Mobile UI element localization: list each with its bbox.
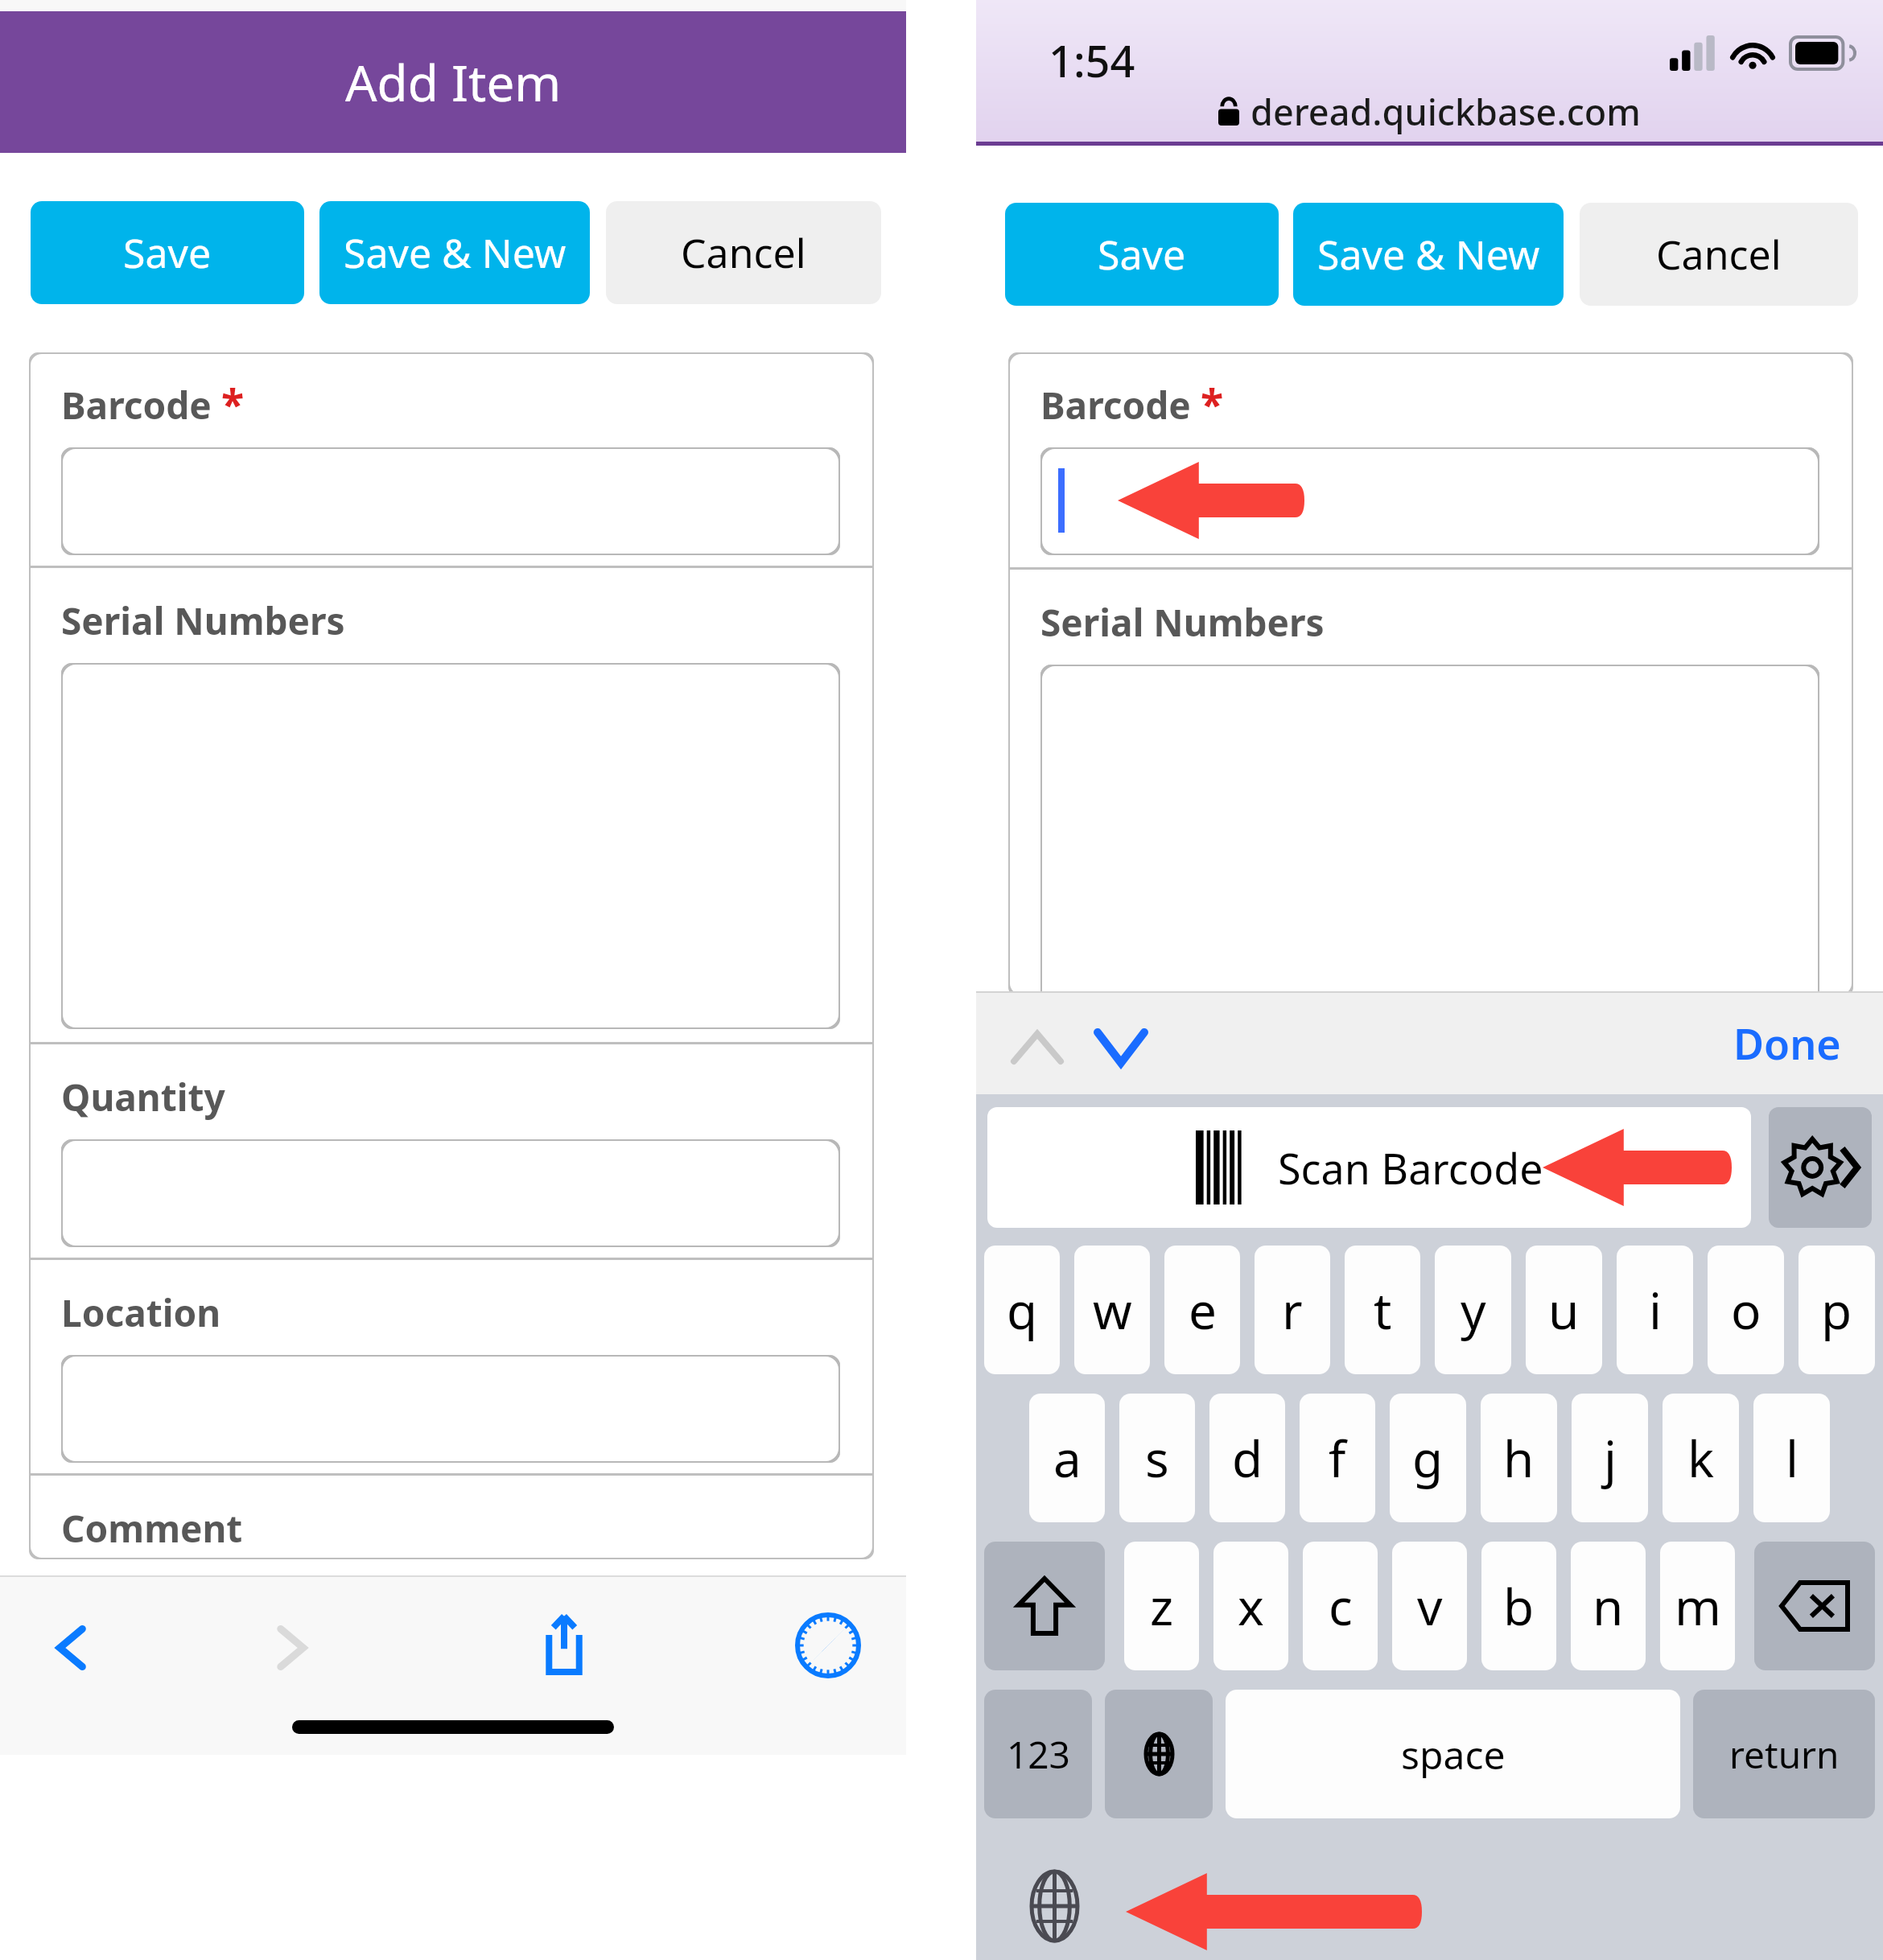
button[interactable]: Switch keyboard — [1010, 1862, 1098, 1950]
staticText: return — [1729, 1729, 1840, 1780]
staticText: u — [1548, 1276, 1580, 1344]
staticText: s — [1145, 1424, 1169, 1492]
staticText: z — [1150, 1572, 1174, 1640]
button[interactable]: k — [1663, 1394, 1739, 1522]
button[interactable]: c — [1303, 1542, 1378, 1670]
button[interactable]: Back — [24, 1600, 121, 1696]
staticText: c — [1329, 1572, 1353, 1640]
button[interactable]: Save — [1005, 203, 1279, 306]
button[interactable]: return — [1693, 1690, 1875, 1818]
button[interactable]: w — [1074, 1246, 1150, 1374]
staticText: Serial Numbers — [61, 595, 345, 646]
staticText: Cancel — [681, 225, 806, 280]
staticText: Cancel — [1656, 227, 1782, 282]
button[interactable]: q — [984, 1246, 1060, 1374]
button[interactable]: g — [1390, 1394, 1466, 1522]
staticText: Add Item — [345, 48, 562, 116]
button[interactable] — [61, 1355, 840, 1463]
button[interactable]: Save & New — [319, 201, 590, 304]
staticText: v — [1417, 1572, 1443, 1640]
staticText: e — [1189, 1276, 1217, 1344]
button[interactable] — [1040, 447, 1819, 555]
staticText: o — [1731, 1276, 1761, 1344]
button[interactable]: 123 — [984, 1690, 1092, 1818]
button[interactable]: f — [1300, 1394, 1375, 1522]
staticText: l — [1786, 1424, 1799, 1492]
staticText: r — [1282, 1276, 1303, 1344]
button[interactable]: a — [1029, 1394, 1105, 1522]
button[interactable]: n — [1571, 1542, 1646, 1670]
button[interactable]: m — [1660, 1542, 1735, 1670]
button[interactable]: Save & New — [1293, 203, 1564, 306]
staticText: Done — [1733, 1015, 1841, 1072]
staticText: Scan Barcode — [1278, 1139, 1543, 1196]
staticText: Barcode — [61, 380, 212, 430]
button[interactable]: h — [1481, 1394, 1557, 1522]
staticText: space — [1401, 1728, 1506, 1781]
staticText: Location — [61, 1287, 221, 1338]
staticText: a — [1053, 1424, 1082, 1492]
staticText: Comment — [61, 1503, 243, 1554]
button[interactable]: o — [1708, 1246, 1784, 1374]
staticText: k — [1687, 1424, 1715, 1492]
button[interactable]: Next field — [1082, 1009, 1160, 1086]
button[interactable]: Cancel — [606, 201, 881, 304]
button[interactable]: Scan Barcode — [987, 1107, 1751, 1228]
staticText: b — [1503, 1572, 1535, 1640]
button[interactable]: Save — [31, 201, 304, 304]
staticText: y — [1461, 1276, 1486, 1344]
button[interactable]: y — [1435, 1246, 1511, 1374]
button[interactable]: Switch keyboard — [1105, 1690, 1213, 1818]
staticText: m — [1675, 1572, 1721, 1640]
button[interactable]: Settings — [1769, 1107, 1872, 1228]
button[interactable]: p — [1799, 1246, 1875, 1374]
button[interactable]: Previous field — [999, 1009, 1076, 1086]
button[interactable]: Done — [1733, 1015, 1841, 1072]
button[interactable]: Shift — [984, 1542, 1105, 1670]
button[interactable] — [61, 447, 840, 555]
button[interactable] — [61, 1139, 840, 1247]
staticText: h — [1503, 1424, 1535, 1492]
button[interactable]: r — [1255, 1246, 1330, 1374]
staticText: d — [1232, 1424, 1263, 1492]
button[interactable]: Tabs — [777, 1595, 879, 1696]
button[interactable] — [61, 663, 840, 1029]
staticText: Barcode — [1040, 380, 1191, 430]
button[interactable]: l — [1753, 1394, 1830, 1522]
staticText: w — [1093, 1276, 1132, 1344]
staticText: q — [1007, 1276, 1038, 1344]
staticText: * — [1201, 375, 1224, 432]
staticText: x — [1238, 1572, 1264, 1640]
button[interactable]: b — [1481, 1542, 1556, 1670]
staticText: Save — [123, 225, 212, 280]
staticText: 1:54 — [1049, 31, 1135, 90]
button[interactable]: d — [1209, 1394, 1285, 1522]
button[interactable]: i — [1617, 1246, 1693, 1374]
button[interactable]: z — [1124, 1542, 1199, 1670]
staticText: p — [1821, 1276, 1852, 1344]
button[interactable]: Forward — [241, 1600, 338, 1696]
button[interactable]: space — [1226, 1690, 1680, 1818]
staticText: Save & New — [1317, 227, 1540, 282]
button[interactable] — [1040, 665, 1819, 996]
staticText: 123 — [1007, 1729, 1070, 1780]
button[interactable]: s — [1119, 1394, 1195, 1522]
staticText: Save — [1098, 227, 1186, 282]
staticText: g — [1412, 1424, 1444, 1492]
staticText: i — [1649, 1276, 1662, 1344]
button[interactable]: j — [1572, 1394, 1648, 1522]
button[interactable]: Share — [512, 1591, 616, 1696]
button[interactable]: t — [1345, 1246, 1420, 1374]
button[interactable]: e — [1164, 1246, 1240, 1374]
button[interactable]: u — [1526, 1246, 1602, 1374]
button[interactable]: Backspace — [1754, 1542, 1875, 1670]
staticText: t — [1374, 1276, 1392, 1344]
staticText: Quantity — [61, 1072, 225, 1122]
button[interactable]: x — [1213, 1542, 1288, 1670]
staticText: f — [1329, 1424, 1346, 1492]
staticText: n — [1593, 1572, 1624, 1640]
button[interactable]: Cancel — [1580, 203, 1858, 306]
staticText: deread.quickbase.com — [1251, 87, 1641, 136]
staticText: Serial Numbers — [1040, 597, 1325, 648]
button[interactable]: v — [1392, 1542, 1467, 1670]
